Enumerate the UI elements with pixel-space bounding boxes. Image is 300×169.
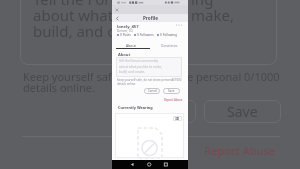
staticText: e personal: [187, 69, 242, 84]
staticText: 0 Posts: [120, 33, 131, 37]
staticText: Save: [168, 89, 175, 93]
button[interactable]: [148, 100, 196, 123]
staticText: Currently Wearing: [118, 105, 153, 110]
staticText: 0/1000: [244, 69, 280, 84]
staticText: lonely_457: [117, 24, 139, 30]
button[interactable]: Cancel: [144, 88, 160, 94]
staticText: make,: [191, 5, 234, 25]
button[interactable]: Donations: [150, 42, 188, 48]
staticText: Keep yourself saf: [23, 69, 112, 84]
staticText: ing: [191, 0, 214, 9]
staticText: 0 Followers: [137, 33, 154, 37]
button[interactable]: About: [112, 42, 150, 48]
button[interactable]: Close: [114, 7, 120, 13]
button[interactable]: [20, 0, 277, 65]
staticText: Profile: [143, 15, 158, 21]
staticText: Denver, CO: [117, 29, 133, 33]
staticText: Keep yourself safe, do not share persona…: [117, 78, 174, 82]
staticText: About: [118, 52, 131, 57]
staticText: 3D: [175, 117, 180, 121]
staticText: About: [126, 43, 136, 48]
button[interactable]: Back: [114, 15, 121, 22]
staticText: details online.: [117, 82, 136, 86]
button[interactable]: Tell the Forum community about what you …: [116, 57, 182, 77]
button[interactable]: Save: [163, 88, 180, 94]
button[interactable]: Report Abuse: [164, 98, 183, 102]
button[interactable]: More options: [175, 21, 183, 29]
staticText: Donations: [161, 43, 178, 48]
staticText: Cancel: [148, 89, 157, 93]
staticText: Report Abuse: [164, 98, 183, 102]
button[interactable]: Report Abuse: [204, 143, 276, 158]
staticText: 0/1000: [172, 78, 182, 82]
staticText: Report Abuse: [204, 143, 276, 158]
staticText: Save: [227, 102, 258, 121]
staticText: about what: [33, 5, 114, 25]
staticText: 0 Following: [160, 33, 178, 37]
button[interactable]: 3D: [115, 113, 184, 158]
staticText: details online.: [23, 80, 95, 95]
staticText: build, and c: [33, 21, 115, 41]
staticText: Tell the Foru: [33, 0, 120, 9]
staticText: Tell the Forum community about what you …: [119, 59, 163, 74]
button[interactable]: Save: [204, 100, 281, 123]
